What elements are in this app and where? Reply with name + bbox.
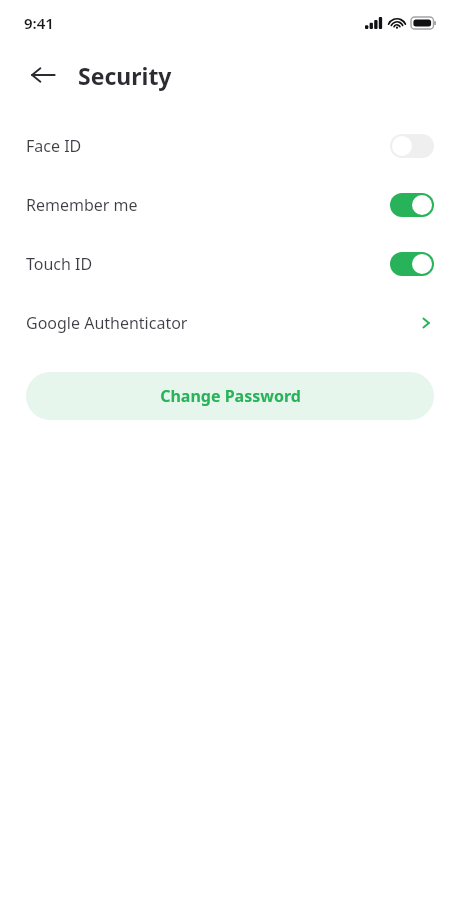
button[interactable] xyxy=(390,193,434,217)
button[interactable]: Remember me xyxy=(0,175,460,234)
staticText: Touch ID xyxy=(26,253,390,275)
staticText: 9:41 xyxy=(24,13,54,33)
staticText: Security xyxy=(78,60,172,91)
staticText: Remember me xyxy=(26,194,390,216)
staticText: Change Password xyxy=(160,385,301,407)
staticText: Face ID xyxy=(26,135,390,157)
button[interactable]: Face ID xyxy=(0,116,460,175)
button[interactable] xyxy=(390,134,434,158)
button[interactable]: Back xyxy=(26,58,60,92)
button[interactable]: Google Authenticator xyxy=(0,293,460,352)
button[interactable] xyxy=(390,252,434,276)
button[interactable]: Touch ID xyxy=(0,234,460,293)
button[interactable]: Change Password xyxy=(26,372,434,420)
staticText: Google Authenticator xyxy=(26,312,418,334)
